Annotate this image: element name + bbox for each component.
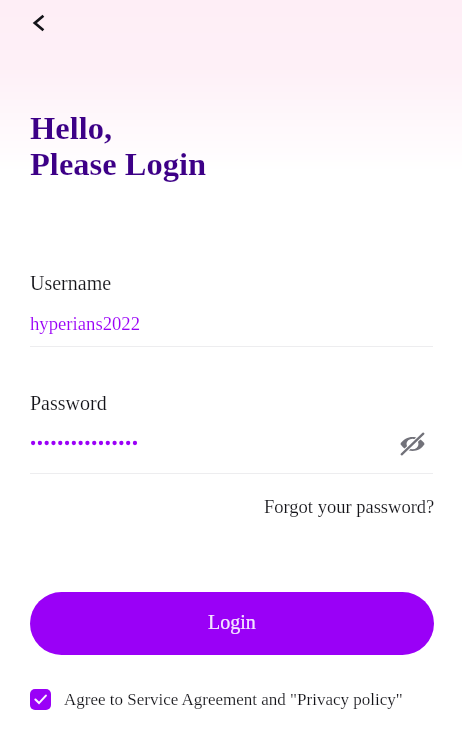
button[interactable]: Agree to Service Agreement and "Privacy …: [30, 689, 403, 710]
staticText: Hello,: [30, 110, 113, 146]
staticText: hyperians2022: [30, 313, 141, 334]
staticText: Login: [208, 611, 256, 633]
button[interactable]: Back: [22, 6, 56, 40]
staticText: Please Login: [30, 146, 207, 182]
staticText: Agree to Service Agreement and "Privacy …: [64, 690, 403, 709]
button[interactable]: Login: [30, 592, 434, 655]
button[interactable]: Show password: [396, 428, 428, 460]
staticText: Forgot your password?: [264, 497, 435, 517]
staticText: Password: [30, 392, 107, 414]
staticText: Username: [30, 272, 112, 294]
button[interactable]: Forgot your password?: [264, 497, 435, 517]
